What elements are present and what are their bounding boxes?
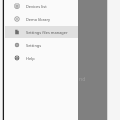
button[interactable]: Demo library	[5, 13, 78, 25]
staticText: Demo library	[26, 17, 51, 22]
staticText: Settings files manager	[26, 30, 68, 35]
staticText: Help	[26, 56, 35, 61]
staticText: Settings	[26, 43, 42, 48]
button[interactable]: Devices list	[5, 0, 78, 12]
button[interactable]: Settings files manager	[5, 26, 78, 38]
staticText: nd	[79, 75, 86, 82]
staticText: Devices list	[26, 4, 47, 9]
button[interactable]: Settings	[5, 39, 78, 51]
button[interactable]: Help	[5, 52, 78, 64]
